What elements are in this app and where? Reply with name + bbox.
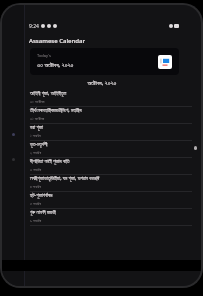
staticText: ৪ নৱেম্বৰ xyxy=(30,184,41,189)
staticText: Today's xyxy=(37,53,51,58)
staticText: ৩১ অক্টোবৰ xyxy=(30,116,45,121)
button[interactable]: লক্ষ্মীপূজাভাতৃদ্বিতীয়া, যম পূজা, ভগৱান… xyxy=(25,175,201,192)
button[interactable]: ছট-পূজাপৰ্বাৰম্ভ xyxy=(25,192,201,209)
button[interactable]: ভূত-চতুৰ্দশী xyxy=(25,141,201,158)
staticText: নৱা পূজা xyxy=(30,124,43,131)
staticText: ৩০ অক্টোবৰ, ২০২৫ xyxy=(37,61,74,69)
button[interactable]: Today's xyxy=(30,48,179,75)
staticText: ৩ নৱেম্বৰ xyxy=(30,167,42,172)
staticText: ৫ নৱেম্বৰ xyxy=(30,201,41,206)
button[interactable]: দীপান্বিতা কালী পূজাৰ ৰাতি xyxy=(25,158,201,175)
staticText: ভূত-চতুৰ্দশী xyxy=(30,141,48,148)
staticText: দীপান্বিতা কালী পূজাৰ ৰাতি xyxy=(30,158,70,165)
staticText: ২ নৱেম্বৰ xyxy=(30,150,42,155)
staticText: 9:24 xyxy=(29,23,39,30)
staticText: Assamese Calendar xyxy=(29,37,85,45)
staticText: লক্ষ্মীপূজাভাতৃদ্বিতীয়া, যম পূজা, ভগৱান… xyxy=(30,175,100,182)
button[interactable]: Add widget xyxy=(158,55,172,69)
button[interactable]: Calendar xyxy=(8,129,19,140)
button[interactable]: নৱা পূজা xyxy=(25,124,201,141)
button[interactable]: আহিনী পূজা, আহিনীতুল xyxy=(25,90,201,107)
staticText: তীৰ্থংকৰমহাৱীৰজয়ন্তীবিংগ, মহাৱীৰ xyxy=(30,107,82,114)
staticText: ৬ নৱেম্বৰ xyxy=(30,218,42,223)
staticText: ১ নৱেম্বৰ xyxy=(30,133,41,138)
staticText: গুৰু নানকী জয়ন্তী xyxy=(30,209,56,216)
staticText: ৩০ অক্টোবৰ xyxy=(30,99,45,104)
staticText: আহিনী পূজা, আহিনীতুল xyxy=(30,90,67,97)
button[interactable]: Settings xyxy=(8,154,19,165)
button[interactable]: তীৰ্থংকৰমহাৱীৰজয়ন্তীবিংগ, মহাৱীৰ xyxy=(25,107,201,124)
staticText: অক্টোবৰ, ২০২৫ xyxy=(25,79,179,87)
staticText: ছট-পূজাপৰ্বাৰম্ভ xyxy=(30,192,53,199)
button[interactable]: গুৰু নানকী জয়ন্তী xyxy=(25,209,201,226)
